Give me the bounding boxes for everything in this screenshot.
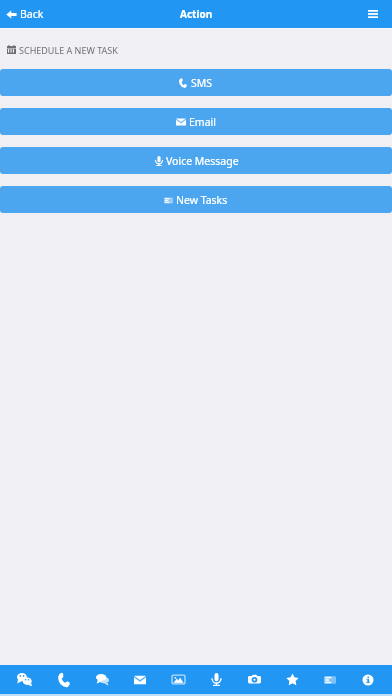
staticText: SMS bbox=[191, 76, 213, 90]
button[interactable]: New Tasks bbox=[0, 186, 392, 213]
staticText: Voice Message bbox=[166, 154, 239, 168]
button[interactable]: Camera bbox=[235, 665, 273, 694]
button[interactable]: Info bbox=[349, 665, 387, 694]
staticText: Back bbox=[20, 7, 44, 21]
button[interactable]: Mail bbox=[121, 665, 159, 694]
staticText: New Tasks bbox=[176, 193, 228, 207]
button[interactable]: Chats bbox=[5, 665, 44, 694]
staticText: SCHEDULE A NEW TASK bbox=[19, 44, 118, 56]
button[interactable]: Call bbox=[44, 665, 83, 694]
button[interactable]: Favorites bbox=[273, 665, 311, 694]
button[interactable]: Email bbox=[0, 108, 392, 135]
button[interactable]: Menu bbox=[360, 0, 392, 28]
button[interactable]: Back bbox=[0, 3, 50, 25]
button[interactable]: Comments bbox=[83, 665, 121, 694]
button[interactable]: SMS bbox=[0, 69, 392, 96]
staticText: Action bbox=[180, 7, 213, 21]
button[interactable]: Tasks bbox=[311, 665, 349, 694]
button[interactable]: Photos bbox=[159, 665, 197, 694]
button[interactable]: Voice bbox=[197, 665, 235, 694]
staticText: Email bbox=[189, 115, 216, 129]
button[interactable]: Voice Message bbox=[0, 147, 392, 174]
